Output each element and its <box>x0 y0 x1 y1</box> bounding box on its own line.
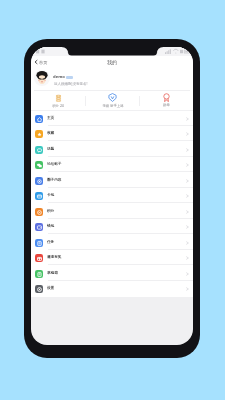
button[interactable]: 话题 <box>31 142 193 157</box>
staticText: 积分 <box>47 209 55 214</box>
button[interactable]: 积分 24 <box>31 92 85 108</box>
staticText: 这人很懒啊,没有签名! <box>54 81 88 86</box>
staticText: 勋章 <box>163 103 170 107</box>
button[interactable]: 论坛帖子 <box>31 157 193 172</box>
staticText: 我的 <box>107 59 117 65</box>
button[interactable]: demo <box>31 70 193 91</box>
staticText: 话题 <box>47 147 55 152</box>
staticText: 等级 新手上路 <box>102 103 124 108</box>
staticText: 设置 <box>47 286 55 291</box>
staticText: 圈子内容 <box>47 178 62 183</box>
button[interactable]: 收藏 <box>31 126 193 141</box>
button[interactable]: 勋章 <box>140 92 193 107</box>
button[interactable]: 卡包 <box>31 188 193 203</box>
button[interactable]: 圈子内容 <box>31 173 193 188</box>
staticText: 积分 24 <box>52 103 64 108</box>
staticText: 论坛帖子 <box>47 162 62 167</box>
staticText: 任务 <box>47 240 55 245</box>
button[interactable]: 等级 新手上路 <box>86 92 139 108</box>
staticText: 卡包 <box>47 193 55 198</box>
staticText: 收藏 <box>47 131 55 136</box>
staticText: demo <box>53 74 65 80</box>
staticText: 主页 <box>47 116 55 121</box>
button[interactable]: 返回首页 <box>34 59 48 65</box>
staticText: 首页 <box>39 60 48 65</box>
staticText: 钱包 <box>47 224 55 229</box>
button[interactable]: 钱包 <box>31 219 193 234</box>
button[interactable]: 任务 <box>31 235 193 250</box>
button[interactable]: 邀请有奖 <box>31 250 193 265</box>
staticText: 邀请有奖 <box>47 255 62 260</box>
button[interactable]: 草稿箱 <box>31 266 193 281</box>
button[interactable]: 积分 <box>31 204 193 219</box>
staticText: 草稿箱 <box>47 271 58 276</box>
button[interactable]: 主页 <box>31 111 193 126</box>
button[interactable]: 设置 <box>31 281 193 296</box>
